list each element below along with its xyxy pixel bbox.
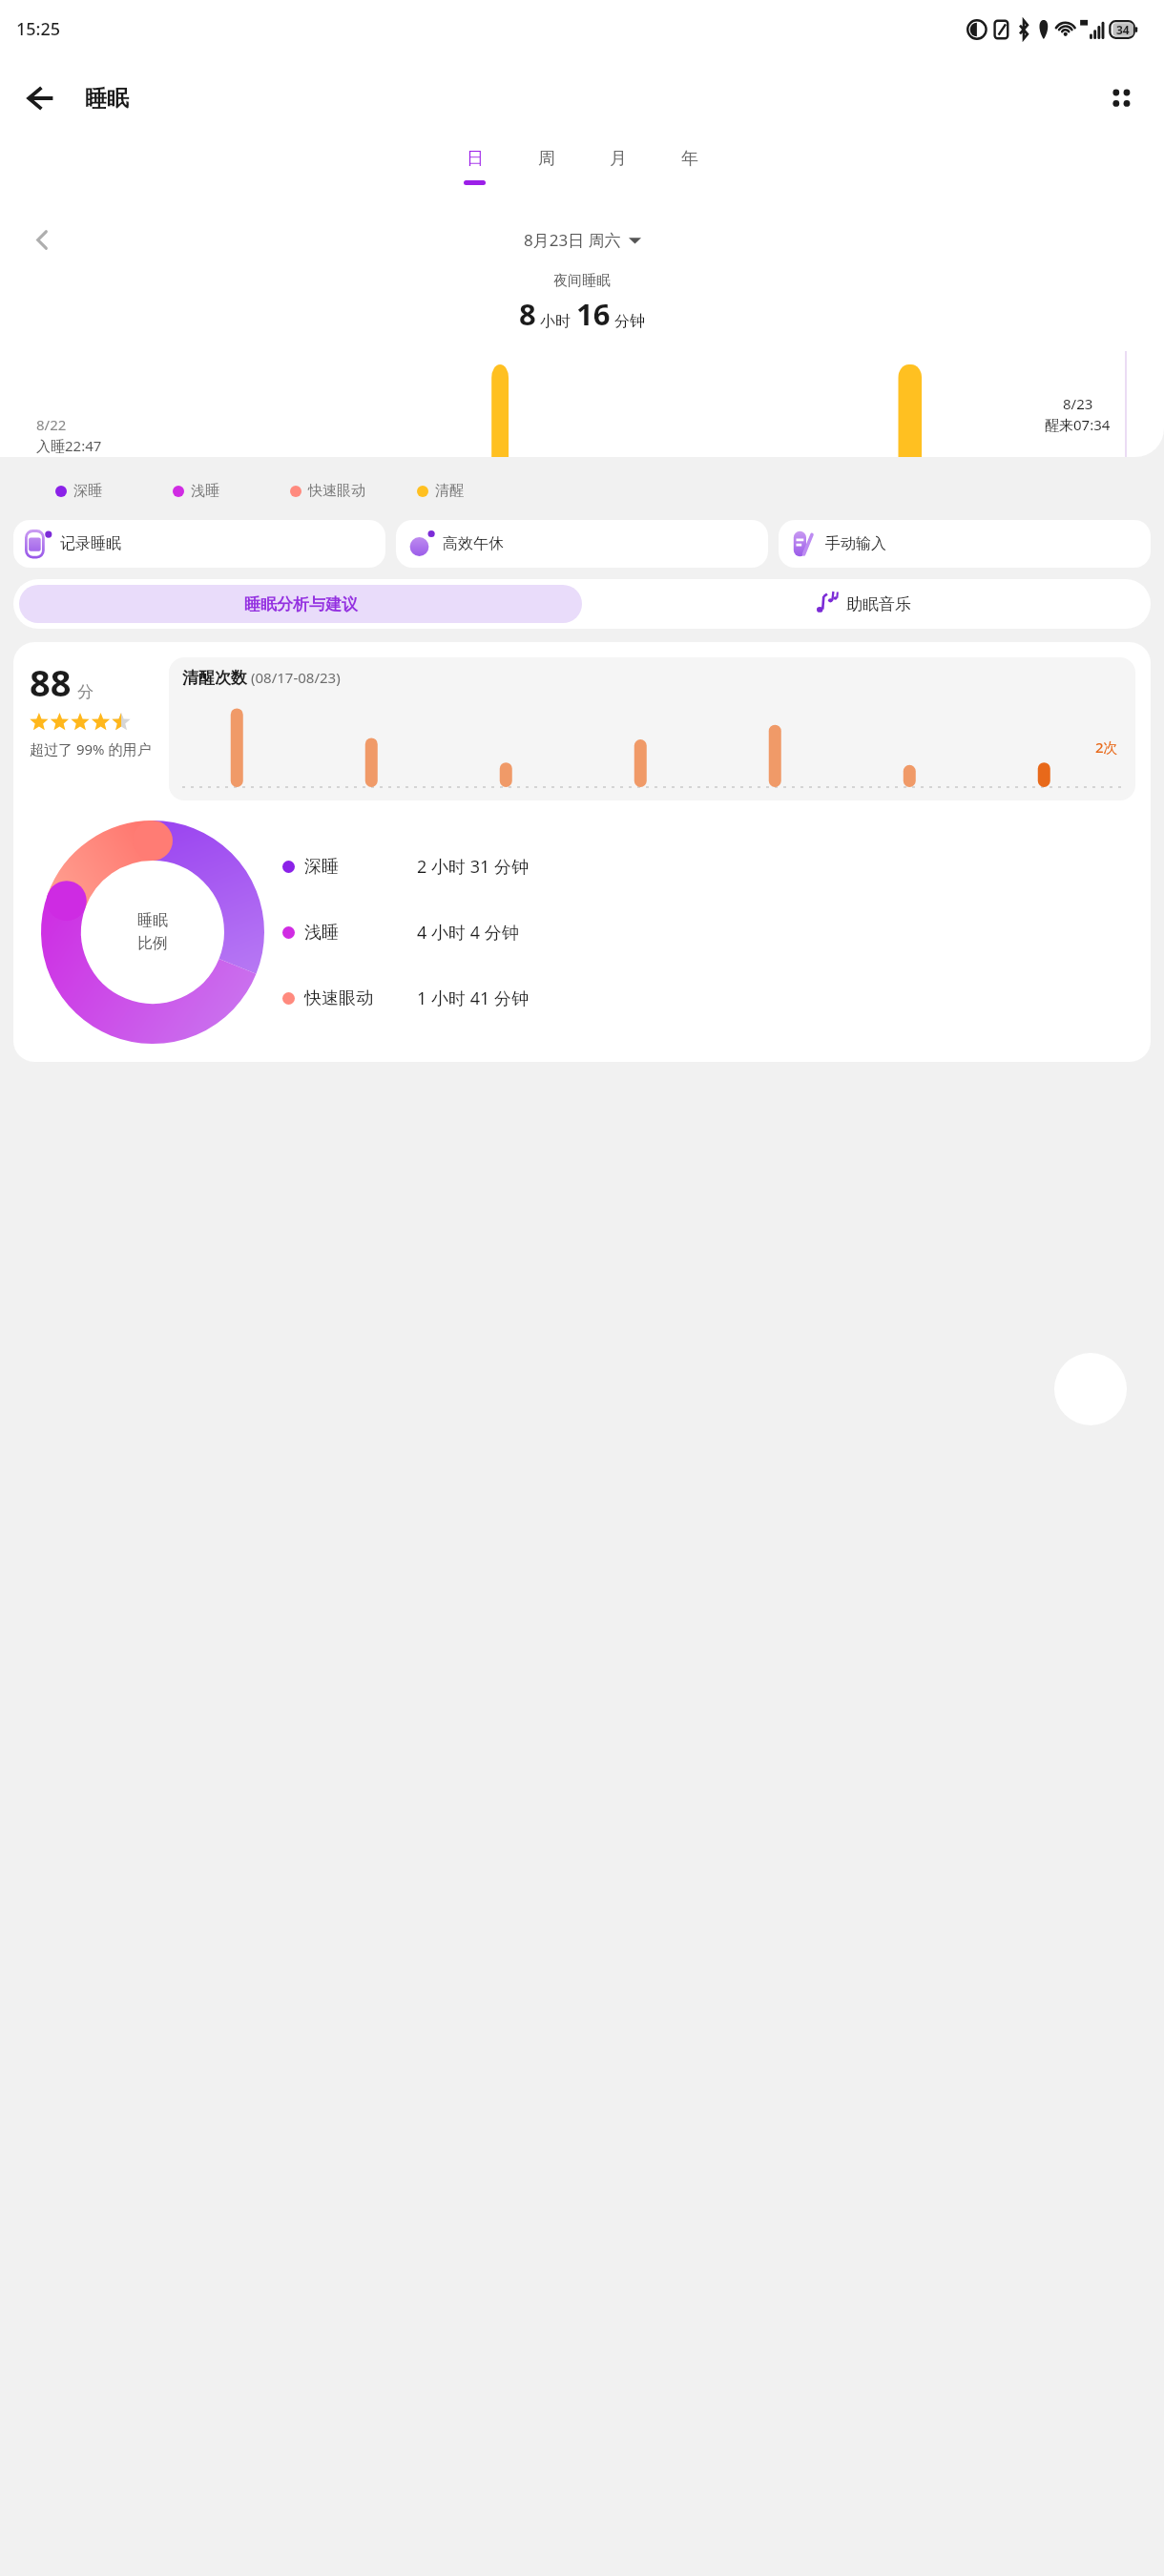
staticText: 醒来07:34 [1045,415,1111,434]
staticText: 快速眼动 [308,482,365,500]
staticText: 分 [77,682,94,702]
staticText: 入睡22:47 [36,436,102,455]
staticText: 浅睡 [304,922,417,944]
button[interactable]: 88 [13,642,1151,1062]
staticText: 8/22 [36,415,67,434]
staticText: 年 [681,148,698,170]
button[interactable]: 记录睡眠 [13,520,385,568]
button[interactable]: 睡眠分析与建议 [19,585,582,623]
button[interactable]: 快速眼动 [282,987,1151,1010]
button[interactable]: 清醒 [417,482,464,500]
staticText: 2 小时 31 分钟 [417,855,529,879]
button[interactable]: 手动输入 [779,520,1151,568]
staticText: 月 [610,148,627,170]
staticText: 高效午休 [443,534,504,553]
staticText: 2次 [1095,737,1118,757]
button[interactable]: 高效午休 [396,520,768,568]
button[interactable]: 浅睡 [282,921,1151,945]
staticText: 比例 [137,934,168,953]
button[interactable]: 清醒次数 [169,657,1135,800]
staticText: 记录睡眠 [60,534,121,553]
staticText: 小时 [540,312,571,331]
staticText: 助眠音乐 [846,594,911,614]
staticText: 睡眠分析与建议 [244,594,358,614]
staticText: 浅睡 [191,482,219,500]
button[interactable]: 深睡 [55,482,102,500]
staticText: 夜间睡眠 [0,272,1164,290]
button[interactable]: 8月23日 周六 [524,229,641,251]
staticText: 睡眠 [137,911,168,930]
staticText: 周 [538,148,555,170]
staticText: 8 [519,294,536,334]
staticText: 清醒次数 [182,668,247,688]
staticText: 睡眠 [85,85,129,113]
button[interactable]: 日 [439,138,510,213]
button[interactable]: 周 [510,138,582,213]
staticText: 超过了 99% 的用户 [30,739,152,758]
staticText: 日 [467,148,484,170]
button[interactable]: 深睡 [282,855,1151,879]
staticText: 4 小时 4 分钟 [417,921,519,945]
staticText: 16 [576,294,611,334]
staticText: 深睡 [73,482,102,500]
staticText: 快速眼动 [304,987,417,1009]
button[interactable]: 年 [654,138,725,213]
staticText: 清醒 [435,482,464,500]
button[interactable]: 浅睡 [173,482,219,500]
staticText: 深睡 [304,856,417,878]
button[interactable]: 更多选项 [1093,71,1149,126]
staticText: 8月23日 周六 [524,229,621,251]
staticText: 15:25 [16,17,61,41]
button[interactable]: 助眠音乐 [582,585,1145,623]
staticText: 88 [30,657,72,707]
staticText: 手动输入 [825,534,886,553]
staticText: 分钟 [614,312,645,331]
staticText: (08/17-08/23) [251,668,341,687]
button[interactable]: 返回 [10,69,69,128]
staticText: 8/23 [1063,394,1093,413]
staticText: 34 [1116,22,1130,37]
button[interactable]: 快速眼动 [290,482,365,500]
button[interactable]: 前一天 [17,215,67,264]
staticText: 1 小时 41 分钟 [417,987,529,1010]
button[interactable]: 月 [582,138,654,213]
